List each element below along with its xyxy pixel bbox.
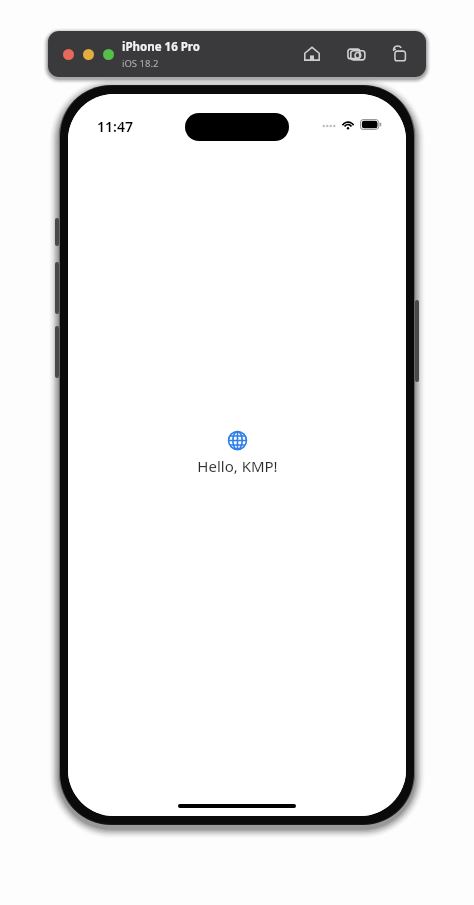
button[interactable]: Volume down: [55, 326, 59, 378]
button[interactable]: Globe: [228, 431, 247, 450]
button[interactable]: Side button: [415, 300, 419, 382]
staticText: iPhone 16 Pro: [122, 39, 200, 55]
button[interactable]: Silent switch: [55, 218, 59, 246]
button[interactable]: Home: [300, 42, 324, 66]
button[interactable]: Screenshot: [344, 42, 368, 66]
button[interactable]: Rotate: [388, 42, 412, 66]
button[interactable]: Minimize: [83, 49, 94, 60]
staticText: iOS 18.2: [122, 57, 159, 70]
button[interactable]: Close: [63, 49, 74, 60]
button[interactable]: Volume up: [55, 262, 59, 314]
staticText: 11:47: [97, 117, 133, 136]
button[interactable]: Zoom: [103, 49, 114, 60]
staticText: Hello, KMP!: [197, 456, 278, 476]
